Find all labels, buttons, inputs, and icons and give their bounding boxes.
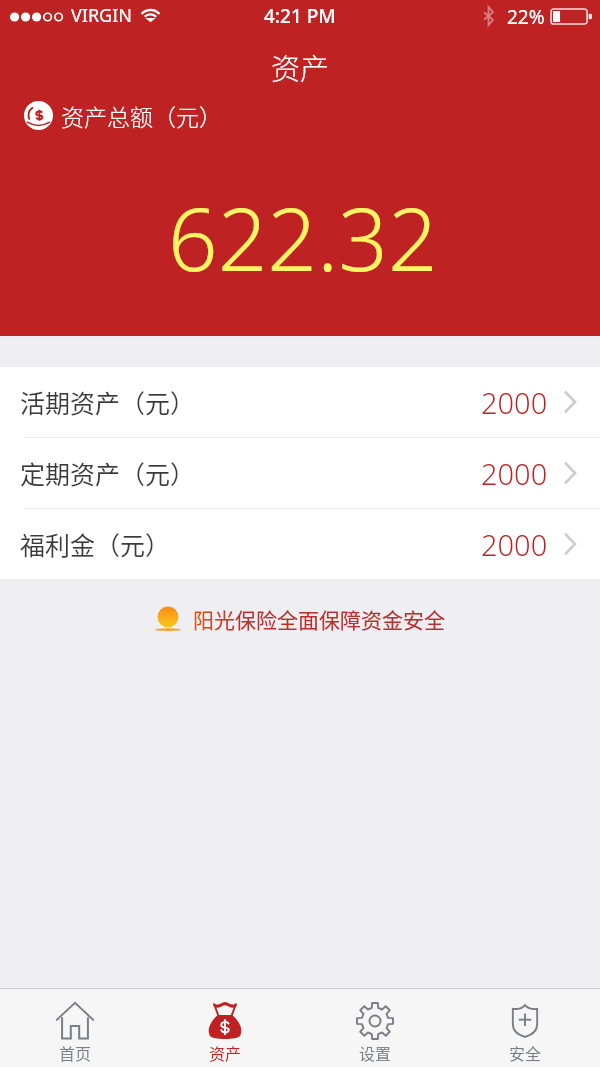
staticText: 定期资产（元） [20, 455, 196, 491]
staticText: 首页 [59, 1041, 92, 1064]
button[interactable]: 设置 [300, 989, 450, 1067]
button[interactable]: 资产 [150, 989, 300, 1067]
button[interactable]: 活期资产（元） [0, 367, 600, 438]
staticText: 阳光保险全面保障资金安全 [193, 604, 445, 634]
staticText: 安全 [509, 1041, 542, 1064]
button[interactable]: 安全 [450, 989, 600, 1067]
staticText: 22% [507, 4, 545, 30]
staticText: 4:21 PM [264, 3, 336, 29]
button[interactable]: 定期资产（元） [0, 438, 600, 509]
staticText: 福利金（元） [20, 526, 171, 562]
button[interactable]: 福利金（元） [0, 509, 600, 579]
staticText: VIRGIN [71, 3, 132, 28]
staticText: 2000 [481, 525, 548, 564]
staticText: 资产 [271, 46, 330, 88]
staticText: 资产总额（元） [61, 99, 222, 132]
staticText: 资产 [209, 1041, 242, 1064]
button[interactable]: 首页 [0, 989, 150, 1067]
staticText: 活期资产（元） [20, 384, 196, 420]
staticText: 2000 [481, 383, 548, 422]
staticText: 设置 [359, 1041, 392, 1064]
staticText: 622.32 [168, 178, 438, 296]
staticText: 2000 [481, 454, 548, 493]
